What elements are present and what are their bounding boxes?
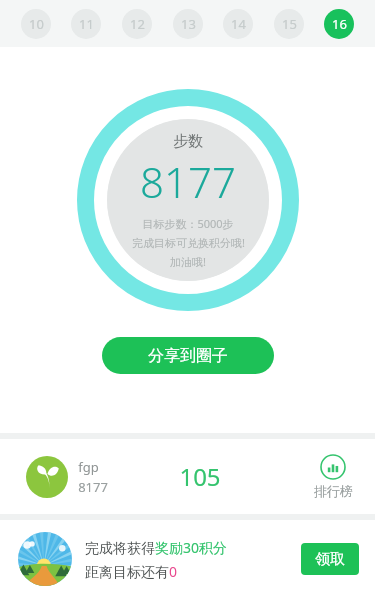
staticText: 步数 (173, 132, 203, 151)
staticText: 领取 (315, 550, 345, 569)
staticText: 分享到圈子 (148, 346, 228, 366)
staticText: 105 (179, 460, 221, 493)
staticText: 11 (79, 15, 94, 33)
button[interactable]: 16 (324, 9, 354, 39)
button[interactable]: 12 (122, 9, 152, 39)
button[interactable]: 15 (274, 9, 304, 39)
button[interactable]: 10 (21, 9, 51, 39)
staticText: 13 (181, 15, 196, 33)
button[interactable]: 11 (71, 9, 101, 39)
staticText: 完成将获得奖励30积分 (85, 538, 228, 557)
staticText: 16 (332, 15, 347, 33)
staticText: 12 (130, 15, 145, 33)
staticText: 加油哦! (170, 254, 206, 269)
staticText: 完成目标可兑换积分哦! (132, 235, 245, 250)
staticText: fgp (78, 458, 99, 476)
staticText: 8177 (78, 478, 108, 496)
staticText: 排行榜 (314, 483, 353, 499)
staticText: 距离目标还有0 (85, 562, 178, 581)
staticText: 8177 (140, 153, 236, 210)
button[interactable]: fgp (26, 456, 108, 498)
button[interactable]: 14 (223, 9, 253, 39)
button[interactable]: 排行榜 (291, 454, 375, 499)
staticText: 目标步数：5000步 (142, 216, 234, 231)
button[interactable]: 分享到圈子 (102, 337, 274, 374)
button[interactable]: 领取 (301, 543, 359, 575)
staticText: 14 (231, 15, 246, 33)
staticText: 10 (29, 15, 44, 33)
button[interactable]: 13 (173, 9, 203, 39)
staticText: 15 (282, 15, 297, 33)
